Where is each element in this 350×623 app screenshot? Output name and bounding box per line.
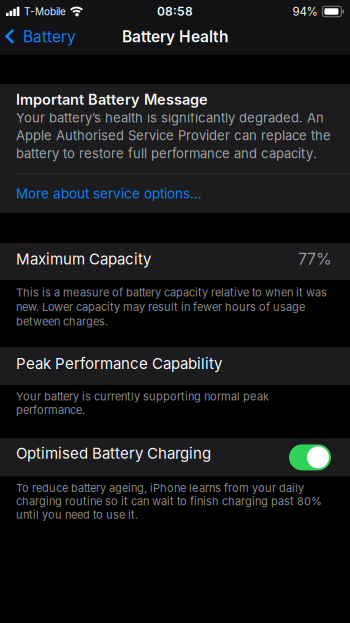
staticText: 77% — [298, 250, 332, 268]
button[interactable]: More about service options… — [0, 174, 350, 213]
staticText: Your battery’s health is significantly d… — [16, 110, 331, 161]
staticText: T-Mobile — [24, 6, 66, 17]
staticText: This is a measure of battery capacity re… — [16, 286, 327, 328]
staticText: Your battery is currently supporting nor… — [16, 390, 269, 416]
button[interactable]: Battery — [0, 27, 76, 46]
staticText: Peak Performance Capability — [16, 355, 222, 372]
staticText: 94% — [292, 5, 317, 18]
staticText: To reduce battery ageing, iPhone learns … — [16, 481, 322, 521]
button[interactable]: Optimised Battery Charging — [289, 444, 331, 470]
staticText: Battery — [23, 27, 76, 46]
staticText: More about service options… — [16, 185, 202, 201]
staticText: Maximum Capacity — [16, 250, 151, 268]
staticText: Important Battery Message — [16, 91, 208, 108]
staticText: 08:58 — [157, 4, 193, 19]
staticText: Battery Health — [122, 27, 228, 46]
staticText: Optimised Battery Charging — [16, 444, 211, 462]
